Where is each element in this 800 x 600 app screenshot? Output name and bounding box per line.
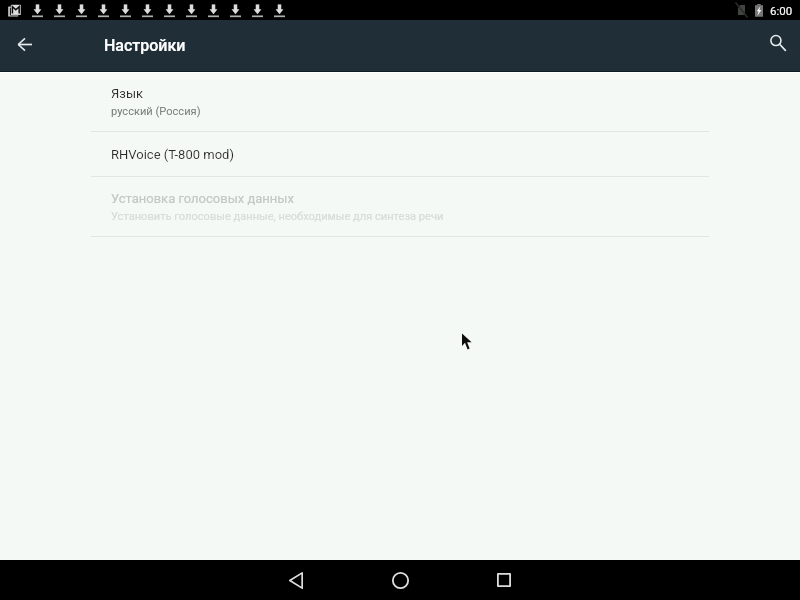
staticText: 6:00 — [770, 4, 793, 17]
button[interactable]: Search — [752, 22, 800, 70]
button[interactable]: Recent apps — [476, 560, 532, 600]
staticText: Установка голосовых данных — [111, 191, 294, 206]
staticText: RHVoice (T-800 mod) — [111, 147, 234, 162]
staticText: русский (Россия) — [111, 105, 201, 118]
button[interactable]: Back — [1, 22, 49, 70]
button[interactable]: Установка голосовых данных — [0, 177, 800, 236]
button[interactable]: Язык — [0, 73, 800, 131]
button[interactable]: Back — [268, 560, 324, 600]
staticText: Язык — [111, 86, 143, 101]
staticText: Настройки — [104, 36, 186, 55]
button[interactable]: Home — [372, 560, 428, 600]
button[interactable]: RHVoice (T-800 mod) — [0, 132, 800, 176]
staticText: Установить голосовые данные, необходимые… — [111, 210, 444, 223]
